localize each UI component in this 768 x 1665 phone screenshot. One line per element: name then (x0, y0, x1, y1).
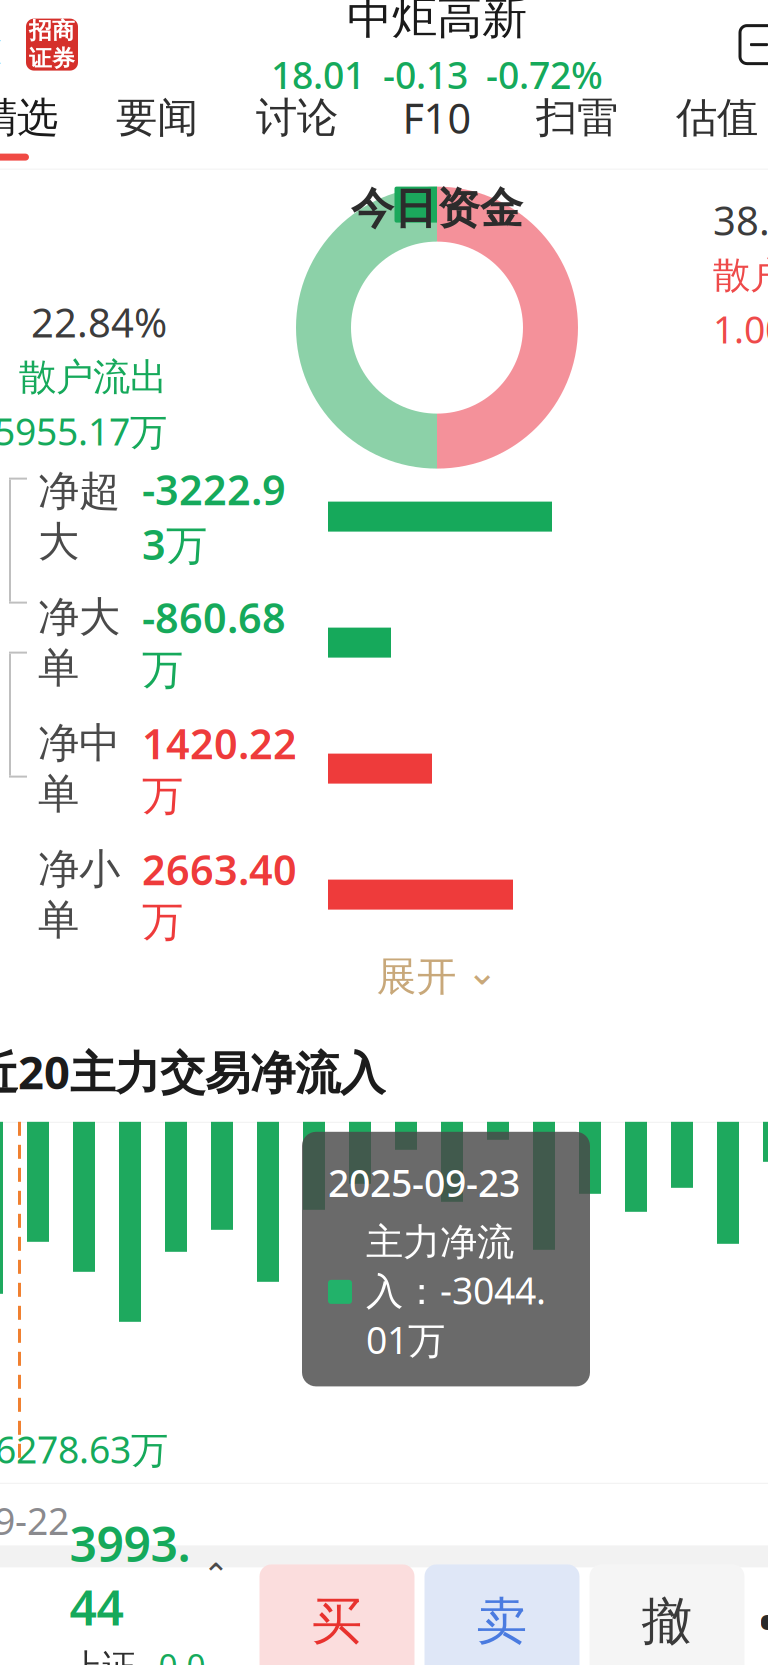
button[interactable]: Minimize (731, 13, 768, 77)
button[interactable]: 3993.44 (47, 1511, 255, 1665)
staticText: 中炬高新 (347, 0, 527, 46)
staticText: 估值 (676, 92, 758, 143)
staticText: 1420.22万 (142, 716, 297, 821)
staticText: 净超大 (38, 466, 120, 567)
staticText: 22.84% (31, 295, 167, 348)
staticText: 招商 (29, 17, 75, 45)
button[interactable]: More (744, 1564, 768, 1665)
staticText: ⌄ (466, 950, 497, 993)
staticText: 散户流入 (713, 252, 768, 298)
staticText: 3993.44 (69, 1511, 190, 1639)
staticText: -0.13 (383, 50, 468, 99)
staticText: -0.72% (486, 50, 603, 99)
button[interactable]: 买 (259, 1564, 414, 1665)
staticText: 净小单 (38, 844, 120, 945)
staticText: 今日资金 (351, 183, 523, 235)
button[interactable]: 撤 (589, 1564, 744, 1665)
staticText: 2663.40万 (142, 842, 297, 947)
staticText: -860.68万 (142, 590, 286, 695)
staticText: 讨论 (256, 92, 338, 143)
staticText: 扫雷 (536, 92, 618, 143)
staticText: 买 (311, 1590, 362, 1652)
staticText: 净中单 (38, 718, 120, 819)
button[interactable]: 估值 (647, 90, 768, 146)
staticText: ⌃ (202, 1557, 229, 1593)
button[interactable]: 要闻 (87, 90, 227, 146)
button[interactable]: F10 (367, 90, 507, 146)
staticText: 5955.17万 (0, 406, 167, 456)
staticText: 上证指数 (69, 1646, 135, 1665)
staticText: 撤 (641, 1590, 692, 1652)
staticText: 主力净流入：-3044.01万 (366, 1219, 546, 1364)
staticText: 精选 (0, 92, 58, 143)
button[interactable]: 扫雷 (507, 90, 647, 146)
button[interactable]: 讨论 (227, 90, 367, 146)
staticText: 要闻 (116, 92, 198, 143)
staticText: 卖 (476, 1590, 527, 1652)
button[interactable]: 精选 (0, 90, 87, 146)
staticText: 09-22 (0, 1496, 69, 1545)
staticText: -6278.63万 (0, 1424, 168, 1474)
staticText: 2025-09-23 (328, 1158, 520, 1207)
staticText: ••• (758, 1589, 768, 1653)
staticText: 1.00亿 (713, 304, 768, 354)
button[interactable]: 展开 (0, 934, 768, 1020)
staticText: ‹ (0, 2, 2, 87)
staticText: 18.01 (271, 50, 365, 99)
staticText: 证券 (29, 45, 75, 72)
staticText: F10 (402, 90, 471, 145)
staticText: 近20主力交易净流入 (0, 1042, 385, 1102)
staticText: 净大单 (38, 592, 120, 693)
staticText: -3222.93万 (142, 462, 286, 571)
staticText: 散户流出 (19, 354, 167, 400)
button[interactable]: 卖 (424, 1564, 579, 1665)
staticText: 38.5% (713, 193, 768, 246)
staticText: 展开 (376, 952, 456, 1001)
button[interactable]: 招商证券 (21, 14, 83, 76)
staticText: -0.09% (147, 1643, 205, 1665)
